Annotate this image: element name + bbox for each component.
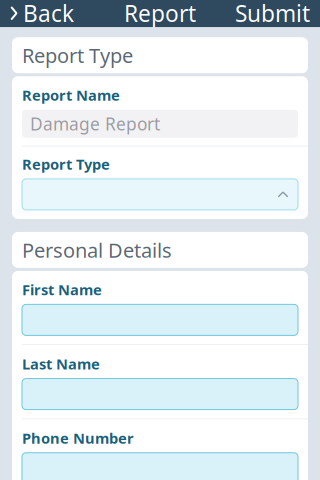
staticText	[157, 17, 163, 47]
staticText: First Name	[22, 280, 102, 299]
button[interactable]	[22, 179, 298, 210]
button[interactable]: Last Name	[22, 379, 298, 410]
button[interactable]: First Name	[22, 304, 298, 335]
button[interactable]: Damage Report	[22, 110, 298, 138]
button[interactable]: Back	[0, 0, 83, 27]
staticText: Report Name	[22, 85, 120, 105]
staticText: Personal Details	[22, 237, 172, 263]
staticText	[157, 60, 163, 90]
staticText: Report	[124, 0, 196, 28]
staticText: Report Type	[22, 154, 110, 174]
staticText	[157, 254, 163, 284]
staticText: Damage Report	[30, 112, 160, 135]
button[interactable]: Phone Number	[22, 453, 298, 480]
staticText: Report Type	[22, 42, 133, 69]
staticText	[157, 92, 163, 122]
staticText: Phone Number	[22, 428, 134, 448]
staticText	[157, 210, 163, 240]
staticText	[157, 161, 163, 191]
staticText	[157, 361, 163, 391]
staticText	[157, 435, 163, 465]
staticText: Back	[23, 0, 74, 28]
staticText	[157, 287, 163, 317]
staticText: Submit	[235, 0, 310, 28]
staticText: Last Name	[22, 354, 100, 374]
button[interactable]: Submit	[225, 0, 320, 27]
